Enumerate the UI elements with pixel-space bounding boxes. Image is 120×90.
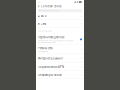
button[interactable]: Интернет-роуминг <box>36 54 84 63</box>
staticText: 9:41 <box>38 1 41 3</box>
button[interactable]: Сеть <box>36 20 84 28</box>
staticText: Операторы связи <box>38 73 62 77</box>
staticText: Сотовая связь <box>41 4 61 8</box>
staticText: Сеть <box>41 22 46 26</box>
staticText: Подключение APN <box>38 65 64 69</box>
button[interactable]: Операторы связи <box>36 71 84 79</box>
button[interactable]: Back <box>38 5 41 7</box>
button[interactable]: Поиск по настройкам <box>38 9 82 12</box>
staticText: Поиск по настройкам <box>41 10 58 12</box>
staticText: Режим сети <box>38 46 53 50</box>
staticText: Авто (4G/3G/2G) <box>38 51 48 52</box>
button[interactable]: Режим сети <box>36 45 84 54</box>
staticText: Обновление счётчика каждые 30 секунд при… <box>38 40 73 43</box>
staticText: Пересчитать данные <box>38 35 64 39</box>
staticText: Wi-Fi <box>41 15 47 18</box>
button[interactable]: Подключение APN <box>36 63 84 71</box>
staticText: Интернет-роуминг <box>38 57 63 60</box>
button[interactable]: Wi-Fi <box>36 13 84 20</box>
button[interactable]: Пересчитать данные <box>36 34 84 45</box>
